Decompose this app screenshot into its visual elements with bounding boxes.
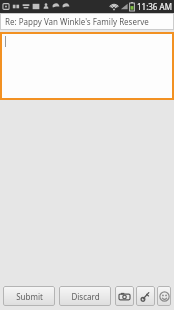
button[interactable]: Submit [3, 286, 55, 306]
staticText: Submit [16, 291, 43, 302]
button[interactable]: Attach [136, 286, 155, 306]
staticText: 11:36 AM [137, 1, 172, 12]
button[interactable]: Insert emoticon [157, 286, 171, 306]
staticText: Discard [71, 291, 100, 302]
button[interactable]: Re: Pappy Van Winkle's Family Reserve [0, 13, 174, 30]
button[interactable] [0, 32, 174, 100]
staticText: Re: Pappy Van Winkle's Family Reserve [5, 16, 149, 27]
button[interactable]: Take photo [115, 286, 134, 306]
button[interactable]: Discard [59, 286, 111, 306]
